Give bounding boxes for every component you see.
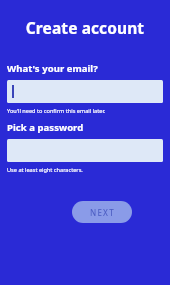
staticText: Create account: [0, 17, 170, 38]
staticText: NEXT: [90, 207, 115, 218]
button[interactable]: Email: [7, 80, 163, 103]
staticText: Pick a password: [7, 121, 84, 134]
staticText: You'll need to confirm this email later.: [7, 107, 106, 115]
button[interactable]: Password: [7, 139, 163, 162]
staticText: Use at least eight characters.: [7, 166, 83, 174]
staticText: What's your email?: [7, 62, 98, 75]
button[interactable]: NEXT: [72, 201, 132, 223]
